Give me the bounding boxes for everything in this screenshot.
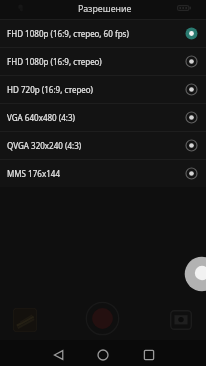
staticText: Разрешение [78, 2, 132, 14]
staticText: QVGA 320x240 (4:3) [7, 140, 185, 151]
staticText: MMS 176x144 [7, 168, 185, 179]
button[interactable]: Home [90, 342, 116, 366]
button[interactable]: VGA 640x480 (4:3) [0, 104, 206, 131]
button[interactable]: HD 720p (16:9, стерео) [0, 76, 206, 103]
button[interactable]: Gallery [13, 308, 37, 332]
button[interactable]: FHD 1080p (16:9, стерео, 60 fps) [0, 20, 206, 47]
button[interactable]: Record video [86, 302, 119, 335]
staticText: FHD 1080p (16:9, стерео) [7, 56, 185, 67]
button[interactable]: Recent apps [136, 342, 162, 366]
staticText: HD 720p (16:9, стерео) [7, 84, 185, 95]
button[interactable]: FHD 1080p (16:9, стерео) [0, 48, 206, 75]
button[interactable]: Back [46, 342, 72, 366]
staticText: FHD 1080p (16:9, стерео, 60 fps) [7, 28, 185, 39]
button[interactable]: QVGA 320x240 (4:3) [0, 132, 206, 159]
staticText: VGA 640x480 (4:3) [7, 112, 185, 123]
button[interactable]: MMS 176x144 [0, 160, 206, 187]
button[interactable]: Switch to photo camera [170, 310, 192, 330]
